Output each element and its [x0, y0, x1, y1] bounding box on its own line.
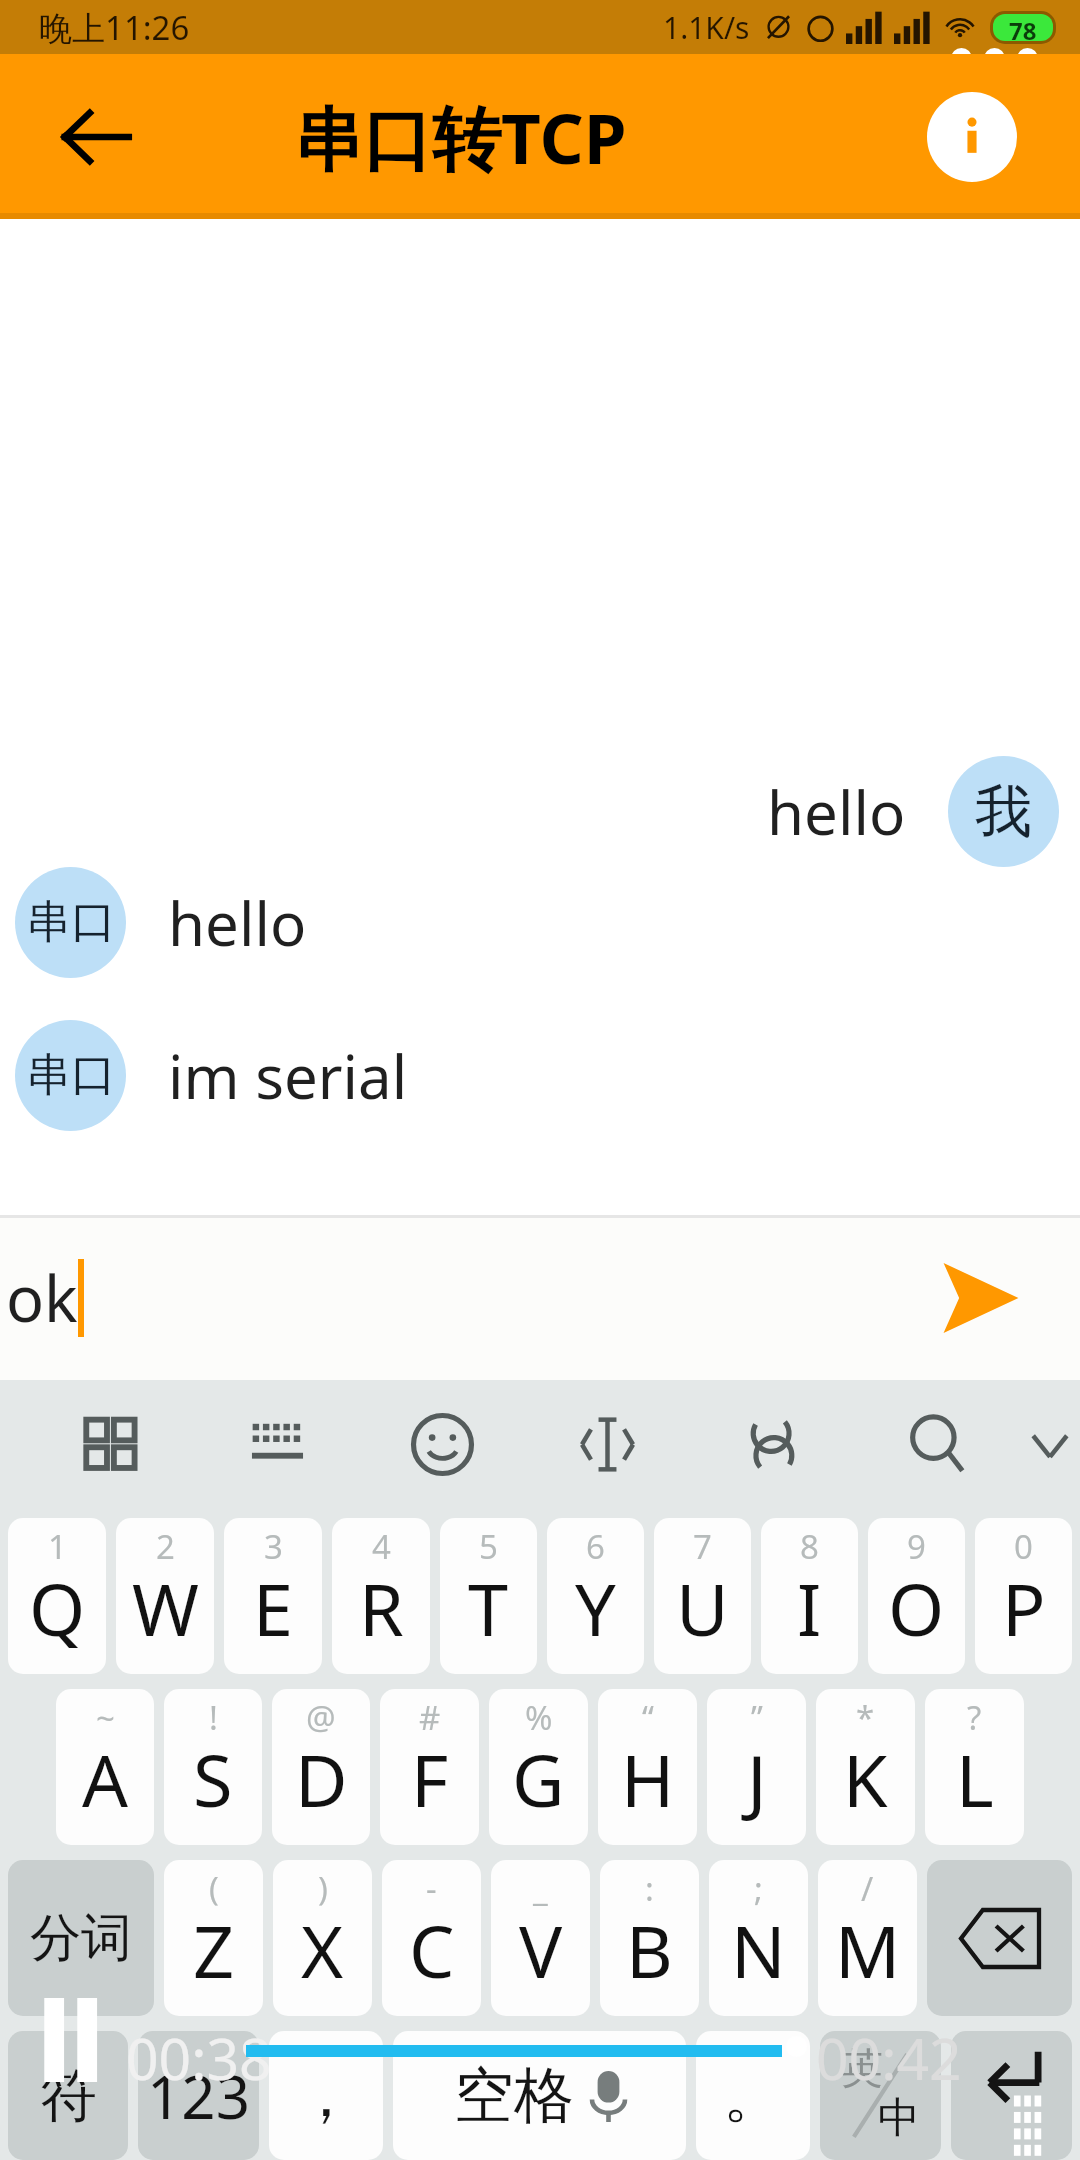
staticText: 分词 [30, 1906, 132, 1970]
button[interactable]: Keyboard layouts [30, 1380, 195, 1509]
button[interactable]: @ [272, 1689, 370, 1845]
staticText: 我 [975, 776, 1032, 848]
staticText: Z [193, 1901, 235, 1999]
staticText: S [193, 1730, 233, 1828]
staticText: 7 [693, 1524, 712, 1569]
button[interactable]: * [816, 1689, 915, 1845]
button[interactable]: 8 [761, 1518, 858, 1674]
button[interactable]: ) [273, 1860, 372, 2016]
button[interactable]: 0 [975, 1518, 1072, 1674]
staticText: - [426, 1866, 437, 1911]
button[interactable]: 9 [868, 1518, 965, 1674]
staticText: T [468, 1559, 509, 1657]
staticText: 空格 [454, 2058, 574, 2134]
button[interactable]: ” [707, 1689, 806, 1845]
staticText: ; [754, 1866, 763, 1911]
button[interactable]: % [489, 1689, 588, 1845]
button[interactable]: 分词 [8, 1860, 154, 2016]
button[interactable]: : [600, 1860, 699, 2016]
staticText: M [835, 1901, 901, 1999]
staticText: 00:38 [126, 2019, 272, 2097]
button[interactable]: Info [906, 71, 1038, 203]
button[interactable]: 4 [332, 1518, 430, 1674]
staticText: ~ [96, 1695, 115, 1740]
staticText: 5 [479, 1524, 498, 1569]
button[interactable]: 3 [224, 1518, 322, 1674]
staticText: 串口 [26, 894, 116, 951]
staticText: A [82, 1730, 129, 1828]
button[interactable]: ? [925, 1689, 1024, 1845]
staticText: 1.1K/s [663, 7, 750, 48]
staticText: E [253, 1559, 294, 1657]
staticText: ! [209, 1695, 218, 1740]
staticText: : [645, 1866, 654, 1911]
button[interactable]: 串口 [15, 867, 126, 978]
button[interactable]: ; [709, 1860, 808, 2016]
button[interactable]: Enter [951, 2031, 1072, 2160]
button[interactable]: ~ [56, 1689, 154, 1845]
staticText: 78 [1009, 14, 1037, 41]
button[interactable]: 我 [948, 756, 1059, 867]
staticText: 符 [40, 2060, 97, 2132]
button[interactable]: ( [164, 1860, 263, 2016]
button[interactable]: # [380, 1689, 479, 1845]
button[interactable]: 符 [8, 2031, 128, 2160]
staticText: 4 [372, 1524, 391, 1569]
staticText: L [956, 1730, 994, 1828]
staticText: H [621, 1730, 675, 1828]
staticText: im serial [168, 1035, 408, 1117]
staticText: “ [642, 1695, 654, 1740]
staticText: 0 [1014, 1524, 1033, 1569]
staticText: G [512, 1730, 565, 1828]
staticText: @ [306, 1695, 336, 1740]
button[interactable]: Search [855, 1380, 1020, 1509]
staticText: hello [767, 771, 906, 853]
staticText: J [747, 1730, 767, 1828]
staticText: 9 [907, 1524, 926, 1569]
staticText: I [797, 1559, 822, 1657]
button[interactable]: Clipboard [690, 1380, 855, 1509]
staticText: ) [318, 1866, 328, 1911]
staticText: 6 [586, 1524, 605, 1569]
button[interactable]: “ [598, 1689, 697, 1845]
button[interactable]: 5 [440, 1518, 537, 1674]
button[interactable]: - [382, 1860, 481, 2016]
staticText: 3 [264, 1524, 283, 1569]
button[interactable]: _ [491, 1860, 590, 2016]
button[interactable]: 6 [547, 1518, 644, 1674]
button[interactable]: 。 [696, 2031, 810, 2160]
button[interactable]: Emoji [360, 1380, 525, 1509]
button[interactable]: 2 [116, 1518, 214, 1674]
button[interactable]: Backspace [927, 1860, 1072, 2016]
button[interactable]: Hide keyboard [1020, 1380, 1080, 1509]
staticText: 8 [800, 1524, 819, 1569]
button[interactable]: 7 [654, 1518, 751, 1674]
staticText: B [626, 1901, 673, 1999]
button[interactable]: Switch language [820, 2031, 941, 2160]
button[interactable]: Back [24, 65, 168, 209]
button[interactable]: Send [912, 1229, 1050, 1367]
staticText: F [411, 1730, 449, 1828]
staticText: * [856, 1695, 875, 1740]
staticText: ， [296, 2058, 356, 2134]
button[interactable]: 串口 [15, 1020, 126, 1131]
staticText: K [843, 1730, 888, 1828]
button[interactable]: 1 [8, 1518, 106, 1674]
staticText: U [676, 1559, 729, 1657]
button[interactable]: ， [269, 2031, 383, 2160]
staticText: / [861, 1866, 874, 1911]
button[interactable]: 空格 [393, 2031, 686, 2160]
staticText: ok [6, 1255, 78, 1341]
staticText: W [132, 1559, 199, 1657]
staticText: Y [575, 1559, 616, 1657]
staticText: X [301, 1901, 344, 1999]
staticText: D [295, 1730, 348, 1828]
button[interactable]: Text editing [525, 1380, 690, 1509]
button[interactable]: / [818, 1860, 917, 2016]
staticText: N [731, 1901, 786, 1999]
button[interactable]: 123 [138, 2031, 259, 2160]
button[interactable]: Keyboard [195, 1380, 360, 1509]
staticText: Q [29, 1559, 86, 1657]
staticText: 串口转TCP [294, 90, 627, 184]
button[interactable]: ! [164, 1689, 262, 1845]
